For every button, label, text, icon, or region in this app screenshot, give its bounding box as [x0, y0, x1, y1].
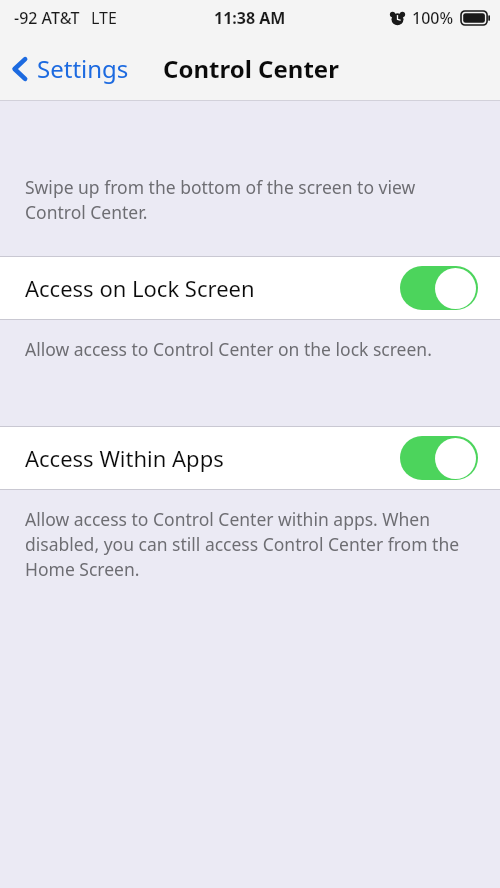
staticText: Control Center: [163, 52, 339, 85]
staticText: Allow access to Control Center within ap…: [25, 507, 475, 581]
staticText: 100%: [412, 7, 454, 29]
staticText: Allow access to Control Center on the lo…: [25, 337, 432, 361]
other: Back: [12, 56, 28, 82]
staticText: Access Within Apps: [25, 443, 224, 473]
staticText: Settings: [37, 52, 129, 85]
button[interactable]: Back: [0, 44, 137, 93]
staticText: -92 AT&T: [14, 7, 80, 29]
button[interactable]: Toggle: [400, 436, 478, 480]
staticText: Swipe up from the bottom of the screen t…: [25, 175, 470, 224]
staticText: LTE: [91, 7, 117, 29]
staticText: Access on Lock Screen: [25, 273, 255, 303]
button[interactable]: Access Within Apps: [0, 427, 500, 489]
button[interactable]: Toggle: [400, 266, 478, 310]
staticText: 11:38 AM: [214, 7, 286, 29]
button[interactable]: Access on Lock Screen: [0, 257, 500, 319]
